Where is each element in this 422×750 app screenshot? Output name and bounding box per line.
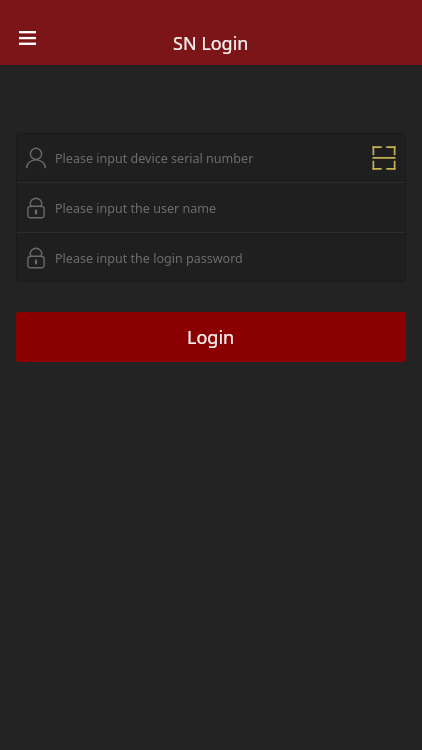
button[interactable]: Login bbox=[16, 312, 406, 362]
staticText: Please input the user name bbox=[55, 200, 406, 217]
button[interactable]: Open navigation menu bbox=[10, 21, 44, 55]
button[interactable]: Please input the login password bbox=[16, 233, 406, 282]
staticText: Please input device serial number bbox=[55, 150, 361, 167]
staticText: Please input the login password bbox=[55, 250, 406, 267]
staticText: Login bbox=[187, 325, 235, 350]
button[interactable]: Please input device serial number bbox=[16, 133, 406, 182]
staticText: SN Login bbox=[173, 31, 249, 56]
button[interactable]: Scan serial number QR code bbox=[361, 133, 406, 182]
button[interactable]: Please input the user name bbox=[16, 183, 406, 232]
